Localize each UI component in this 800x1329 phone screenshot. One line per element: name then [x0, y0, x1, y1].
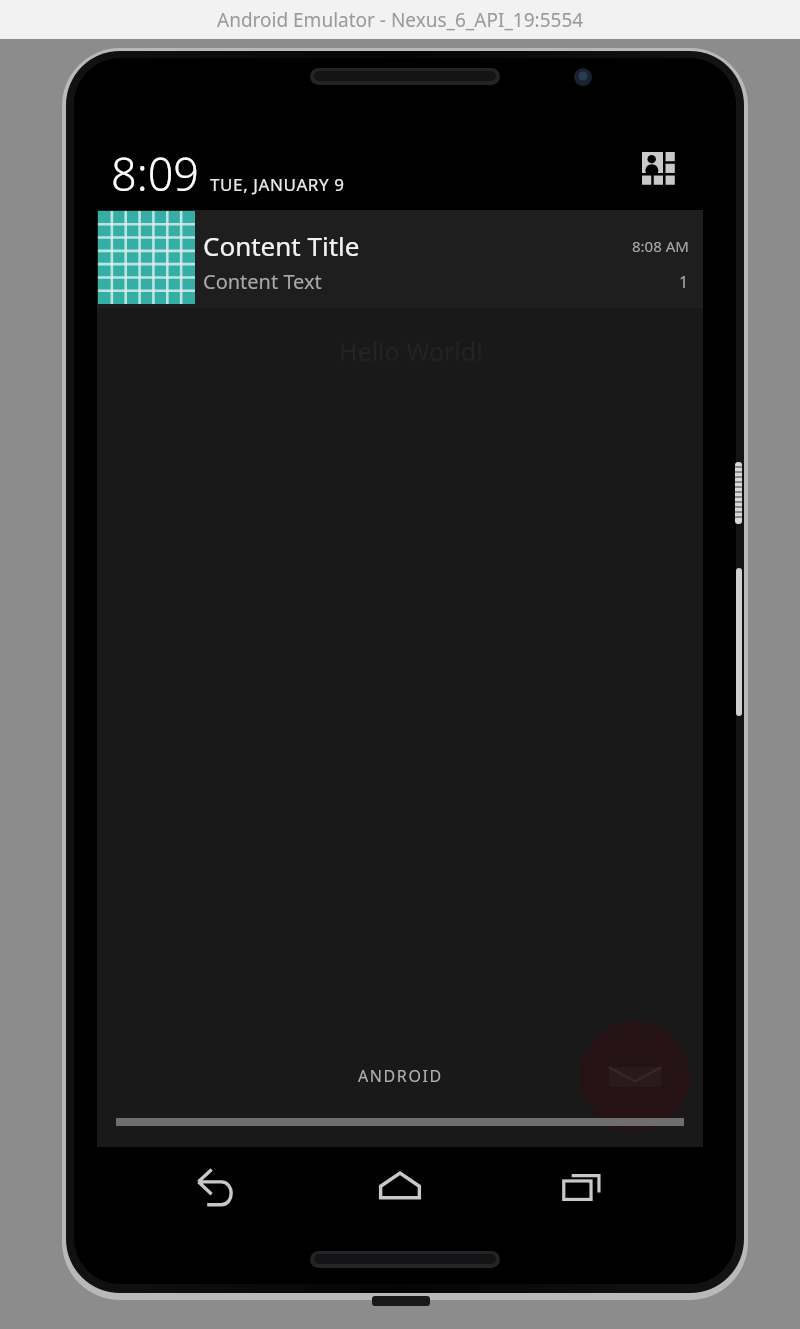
staticText: Content Title [203, 228, 632, 263]
staticText: TUE, JANUARY 9 [210, 173, 345, 196]
button[interactable]: Recent apps [519, 1147, 649, 1229]
button[interactable]: Home [335, 1147, 465, 1229]
staticText: 8:09 [111, 143, 200, 204]
staticText: Content Text [203, 268, 679, 295]
staticText: ANDROID [358, 1065, 443, 1087]
button[interactable]: Quick settings [637, 147, 689, 199]
staticText: Android Emulator - Nexus_6_API_19:5554 [217, 7, 584, 33]
staticText: 1 [679, 271, 689, 293]
button[interactable]: Back [151, 1147, 281, 1229]
staticText: Hello World! [339, 334, 483, 368]
button[interactable]: Content Title [97, 210, 703, 308]
staticText: 8:08 AM [632, 236, 689, 256]
